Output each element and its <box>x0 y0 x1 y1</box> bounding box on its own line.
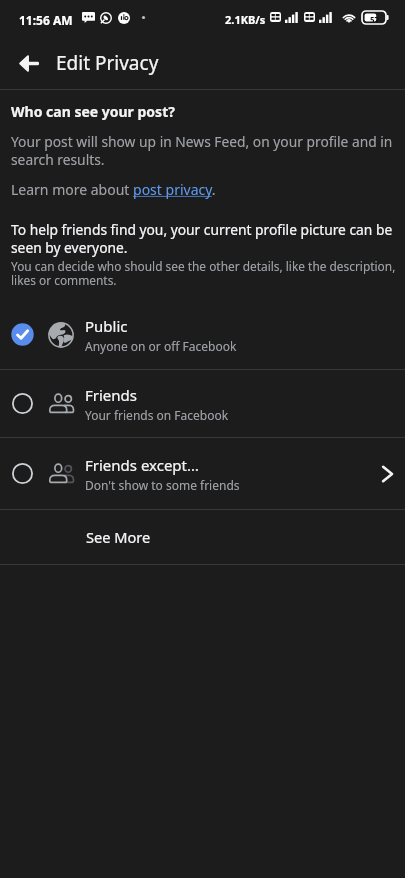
staticText: Who can see your post? <box>11 102 175 121</box>
staticText: Your friends on Facebook <box>85 407 229 423</box>
staticText: 11:56 AM <box>19 12 73 28</box>
staticText: Don't show to some friends <box>85 477 240 493</box>
staticText: Anyone on or off Facebook <box>85 338 237 354</box>
button[interactable]: See More <box>0 510 405 564</box>
staticText: Public <box>85 316 128 336</box>
staticText: You can decide who should see the other … <box>11 258 401 289</box>
staticText: Friends except… <box>85 455 199 475</box>
button[interactable]: Friends <box>0 370 405 437</box>
staticText: Edit Privacy <box>56 50 159 76</box>
button[interactable]: Friends except… <box>0 438 405 509</box>
staticText: See More <box>86 527 151 547</box>
staticText: To help friends find you, your current p… <box>11 220 401 257</box>
staticText: Your post will show up in News Feed, on … <box>11 132 401 169</box>
staticText: Learn more about post privacy. <box>11 180 216 199</box>
staticText: Friends <box>85 385 137 405</box>
staticText: 2.1KB/s <box>225 12 266 27</box>
button[interactable]: Back <box>5 39 53 87</box>
button[interactable]: Public <box>0 300 405 369</box>
staticText: 57 <box>370 14 380 25</box>
